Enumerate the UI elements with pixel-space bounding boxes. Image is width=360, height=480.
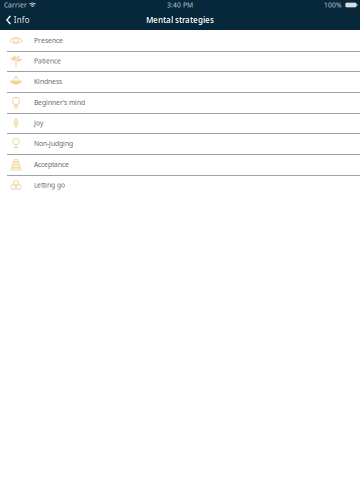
staticText: Presence [34, 36, 63, 45]
staticText: Acceptance [34, 160, 69, 169]
staticText: Info [14, 15, 30, 25]
staticText: Patience [34, 57, 61, 65]
button[interactable]: Patience [0, 51, 360, 71]
staticText: Joy [34, 119, 43, 127]
button[interactable]: Info [0, 12, 30, 28]
button[interactable]: Presence [0, 30, 360, 51]
staticText: Non-judging [34, 139, 73, 148]
staticText: Mental strategies [146, 15, 214, 25]
staticText: 100% [324, 1, 342, 9]
button[interactable]: Kindness [0, 71, 360, 92]
staticText: Carrier [4, 1, 27, 9]
staticText: Kindness [34, 77, 62, 86]
button[interactable]: Letting go [0, 175, 360, 195]
button[interactable]: Non-judging [0, 133, 360, 154]
button[interactable]: Acceptance [0, 154, 360, 175]
staticText: Letting go [34, 181, 65, 189]
button[interactable]: Joy [0, 113, 360, 133]
staticText: Beginner's mind [34, 98, 85, 107]
button[interactable]: Beginner's mind [0, 92, 360, 113]
staticText: 3:40 PM [167, 1, 193, 9]
